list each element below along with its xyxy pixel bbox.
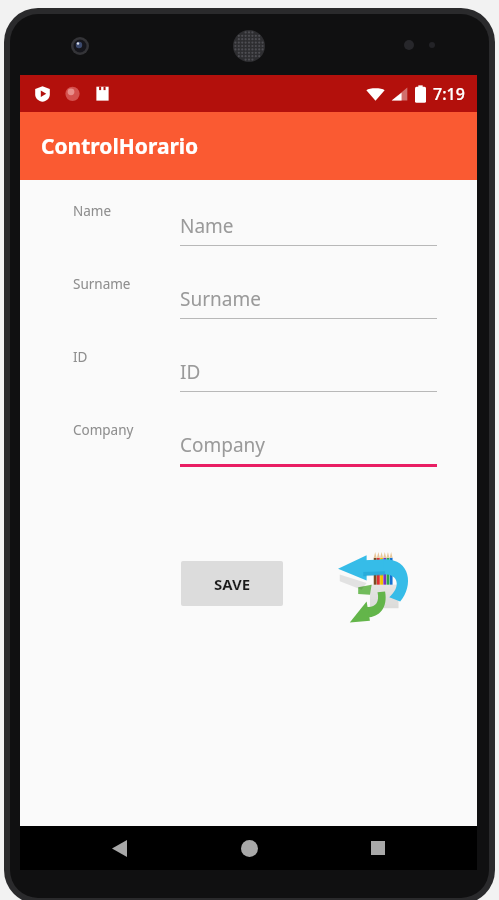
button[interactable]: SAVE: [181, 561, 283, 606]
button[interactable]: Company: [20, 421, 477, 495]
staticText: Company: [180, 432, 266, 458]
staticText: Name: [180, 213, 234, 239]
button[interactable]: Recent apps: [348, 826, 408, 870]
button[interactable]: Name: [20, 202, 477, 275]
button[interactable]: Back: [89, 826, 149, 870]
staticText: ID: [180, 359, 201, 385]
button[interactable]: Refresh: [333, 541, 417, 625]
staticText: Company: [73, 421, 134, 439]
staticText: Name: [73, 202, 112, 220]
button[interactable]: Surname: [20, 275, 477, 348]
button[interactable]: ID: [20, 348, 477, 421]
staticText: Surname: [180, 286, 261, 312]
staticText: Surname: [73, 275, 131, 293]
staticText: ControlHorario: [41, 132, 199, 161]
staticText: SAVE: [214, 574, 251, 594]
button[interactable]: Home: [219, 826, 279, 870]
staticText: ID: [73, 348, 88, 366]
staticText: 7:19: [433, 83, 465, 105]
